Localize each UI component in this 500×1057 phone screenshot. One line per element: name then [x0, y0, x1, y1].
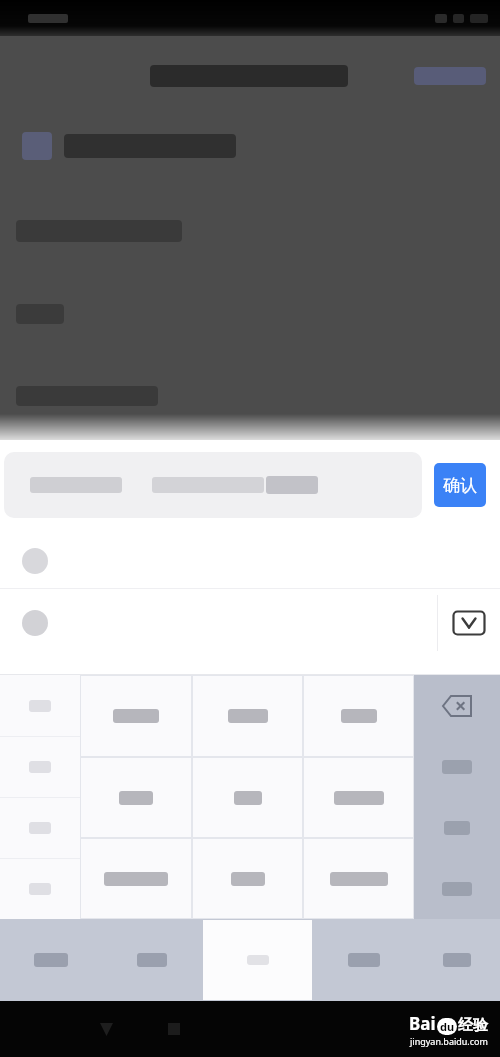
button[interactable] — [414, 858, 500, 919]
button[interactable]: Emoji — [22, 548, 48, 574]
button[interactable] — [193, 758, 302, 837]
button[interactable] — [415, 920, 499, 1000]
button[interactable] — [193, 839, 302, 918]
button[interactable]: Home — [94, 1017, 118, 1041]
button[interactable] — [304, 839, 413, 918]
staticText: jingyan.baidu.com — [410, 1035, 488, 1047]
button[interactable] — [414, 797, 500, 858]
button[interactable] — [0, 675, 80, 736]
button[interactable]: 确认 — [434, 463, 486, 507]
button[interactable] — [0, 859, 80, 919]
button[interactable] — [304, 676, 413, 756]
button[interactable] — [4, 452, 422, 518]
button[interactable] — [0, 737, 80, 797]
button[interactable] — [314, 920, 413, 1000]
button[interactable]: Add — [22, 610, 48, 636]
button[interactable] — [203, 920, 312, 1000]
button[interactable]: Recents — [162, 1017, 186, 1041]
button[interactable] — [414, 736, 500, 797]
staticText: Bai — [409, 1012, 436, 1035]
button[interactable]: Backspace — [414, 675, 500, 736]
staticText: 确认 — [443, 475, 477, 496]
button[interactable] — [102, 920, 201, 1000]
button[interactable] — [81, 676, 191, 756]
button[interactable] — [1, 920, 100, 1000]
staticText: 经验 — [458, 1016, 488, 1035]
staticText: du — [440, 1019, 455, 1034]
button[interactable] — [81, 758, 191, 837]
button[interactable] — [193, 676, 302, 756]
button[interactable] — [304, 758, 413, 837]
button[interactable]: Hide keyboard — [452, 610, 486, 636]
button[interactable] — [81, 839, 191, 918]
button[interactable] — [0, 798, 80, 858]
